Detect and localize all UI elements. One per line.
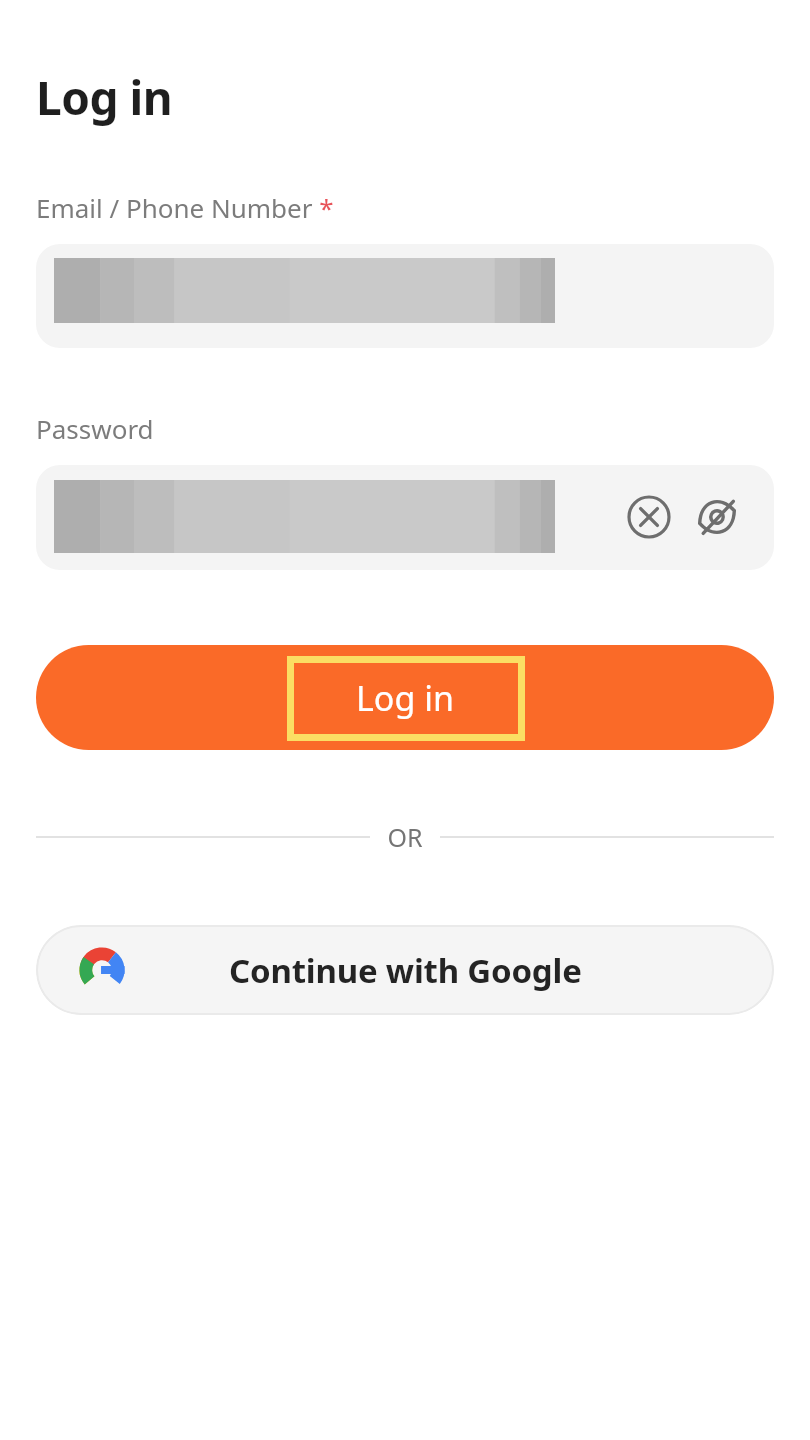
button[interactable]: Continue with Google xyxy=(36,925,774,1015)
staticText: Log in xyxy=(36,66,173,129)
button[interactable]: Clear text xyxy=(623,491,675,543)
button[interactable] xyxy=(36,244,774,348)
staticText: OR xyxy=(387,820,423,854)
staticText: Password xyxy=(36,411,154,446)
button[interactable]: Show password xyxy=(691,491,743,543)
button[interactable]: Log in xyxy=(36,645,774,750)
staticText: Continue with Google xyxy=(229,948,582,993)
staticText: Log in xyxy=(356,675,454,721)
staticText: Email / Phone Number * xyxy=(36,190,334,225)
button[interactable]: Clear text xyxy=(36,465,774,570)
